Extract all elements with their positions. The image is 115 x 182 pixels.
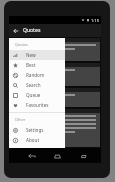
staticText: Cancel bbox=[13, 138, 23, 142]
button[interactable]: Home bbox=[52, 151, 62, 161]
staticText: Best bbox=[26, 62, 36, 68]
button[interactable]: Random bbox=[9, 70, 65, 80]
staticText: Settings bbox=[26, 127, 44, 133]
button[interactable]: Back bbox=[27, 151, 37, 161]
staticText: 1:15 bbox=[91, 18, 99, 23]
button[interactable]: Back bbox=[12, 27, 20, 35]
staticText: Quotes bbox=[23, 27, 41, 34]
staticText: About bbox=[26, 137, 40, 143]
staticText: Favourites bbox=[26, 102, 49, 108]
staticText: next bbox=[32, 138, 39, 142]
staticText: Other bbox=[15, 117, 26, 122]
staticText: Random bbox=[26, 72, 45, 78]
staticText: Quotes bbox=[15, 42, 28, 47]
button[interactable]: Recent apps bbox=[78, 151, 88, 161]
button[interactable] bbox=[10, 38, 100, 61]
button[interactable] bbox=[10, 63, 100, 86]
button[interactable]: New bbox=[9, 50, 65, 60]
button[interactable]: Settings bbox=[9, 125, 65, 135]
staticText: Search bbox=[26, 82, 41, 88]
button[interactable]: Queue bbox=[9, 90, 65, 100]
button[interactable]: About bbox=[9, 135, 65, 145]
staticText: Queue bbox=[26, 92, 41, 98]
button[interactable]: next bbox=[28, 137, 42, 143]
button[interactable] bbox=[10, 88, 100, 107]
button[interactable]: Search bbox=[9, 80, 65, 90]
button[interactable]: Favourites bbox=[9, 100, 65, 110]
button[interactable]: Best bbox=[9, 60, 65, 70]
staticText: New bbox=[26, 52, 36, 58]
button[interactable]: Cancel bbox=[11, 137, 25, 143]
button[interactable]: Cancel bbox=[10, 109, 100, 147]
